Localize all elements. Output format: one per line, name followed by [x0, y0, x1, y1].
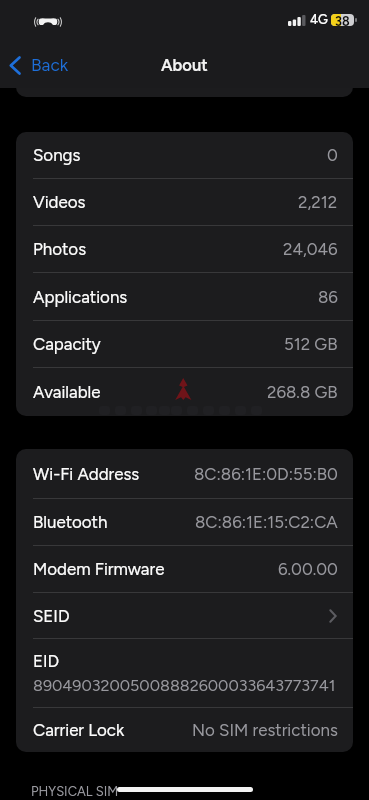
staticText: 512 GB	[284, 334, 338, 354]
other: Open SEID	[329, 609, 337, 623]
other: Cellular signal	[288, 14, 306, 26]
staticText: Capacity	[33, 334, 101, 354]
staticText: 268.8 GB	[267, 382, 338, 402]
button[interactable]: Modem Firmware	[16, 546, 353, 593]
staticText: 2,212	[298, 192, 338, 212]
button[interactable]: Photos	[16, 226, 353, 273]
button[interactable]: SEID	[16, 593, 353, 639]
staticText: PHYSICAL SIM	[31, 784, 119, 800]
button[interactable]: Bluetooth	[16, 499, 353, 546]
staticText: No SIM restrictions	[192, 720, 338, 740]
staticText: 24,046	[283, 239, 338, 259]
staticText: Applications	[33, 287, 128, 307]
staticText: 6.00.00	[278, 559, 338, 579]
staticText: 8C:86:1E:15:C2:CA	[195, 512, 338, 532]
staticText: Available	[33, 382, 101, 402]
staticText: 4G	[310, 12, 328, 28]
button[interactable]: Wi-Fi Address	[16, 449, 353, 499]
staticText: Modem Firmware	[33, 559, 165, 579]
staticText: 89049032005008882600033643773741	[33, 676, 336, 695]
button[interactable]: Videos	[16, 179, 353, 226]
button[interactable]: Songs	[16, 132, 353, 179]
other: Call in progress	[32, 15, 64, 29]
staticText: 38	[335, 14, 350, 26]
staticText: 86	[318, 287, 338, 307]
button[interactable]: Carrier Lock	[16, 708, 353, 752]
staticText: Back	[31, 55, 69, 76]
staticText: Carrier Lock	[33, 720, 125, 740]
staticText: 0	[327, 145, 338, 165]
staticText: Videos	[33, 192, 86, 212]
button[interactable]: Capacity	[16, 321, 353, 368]
staticText: Photos	[33, 239, 87, 259]
staticText: SEID	[33, 606, 70, 626]
staticText: 8C:86:1E:0D:55:B0	[194, 464, 338, 484]
staticText: About	[161, 55, 208, 75]
staticText: Songs	[33, 145, 81, 165]
staticText: Bluetooth	[33, 512, 108, 532]
button[interactable]: Back	[0, 49, 81, 82]
button[interactable]: Applications	[16, 273, 353, 321]
button[interactable]: Available	[16, 368, 353, 416]
staticText: EID	[33, 651, 60, 671]
button[interactable]: EID	[16, 639, 353, 708]
staticText: Wi-Fi Address	[33, 464, 140, 484]
